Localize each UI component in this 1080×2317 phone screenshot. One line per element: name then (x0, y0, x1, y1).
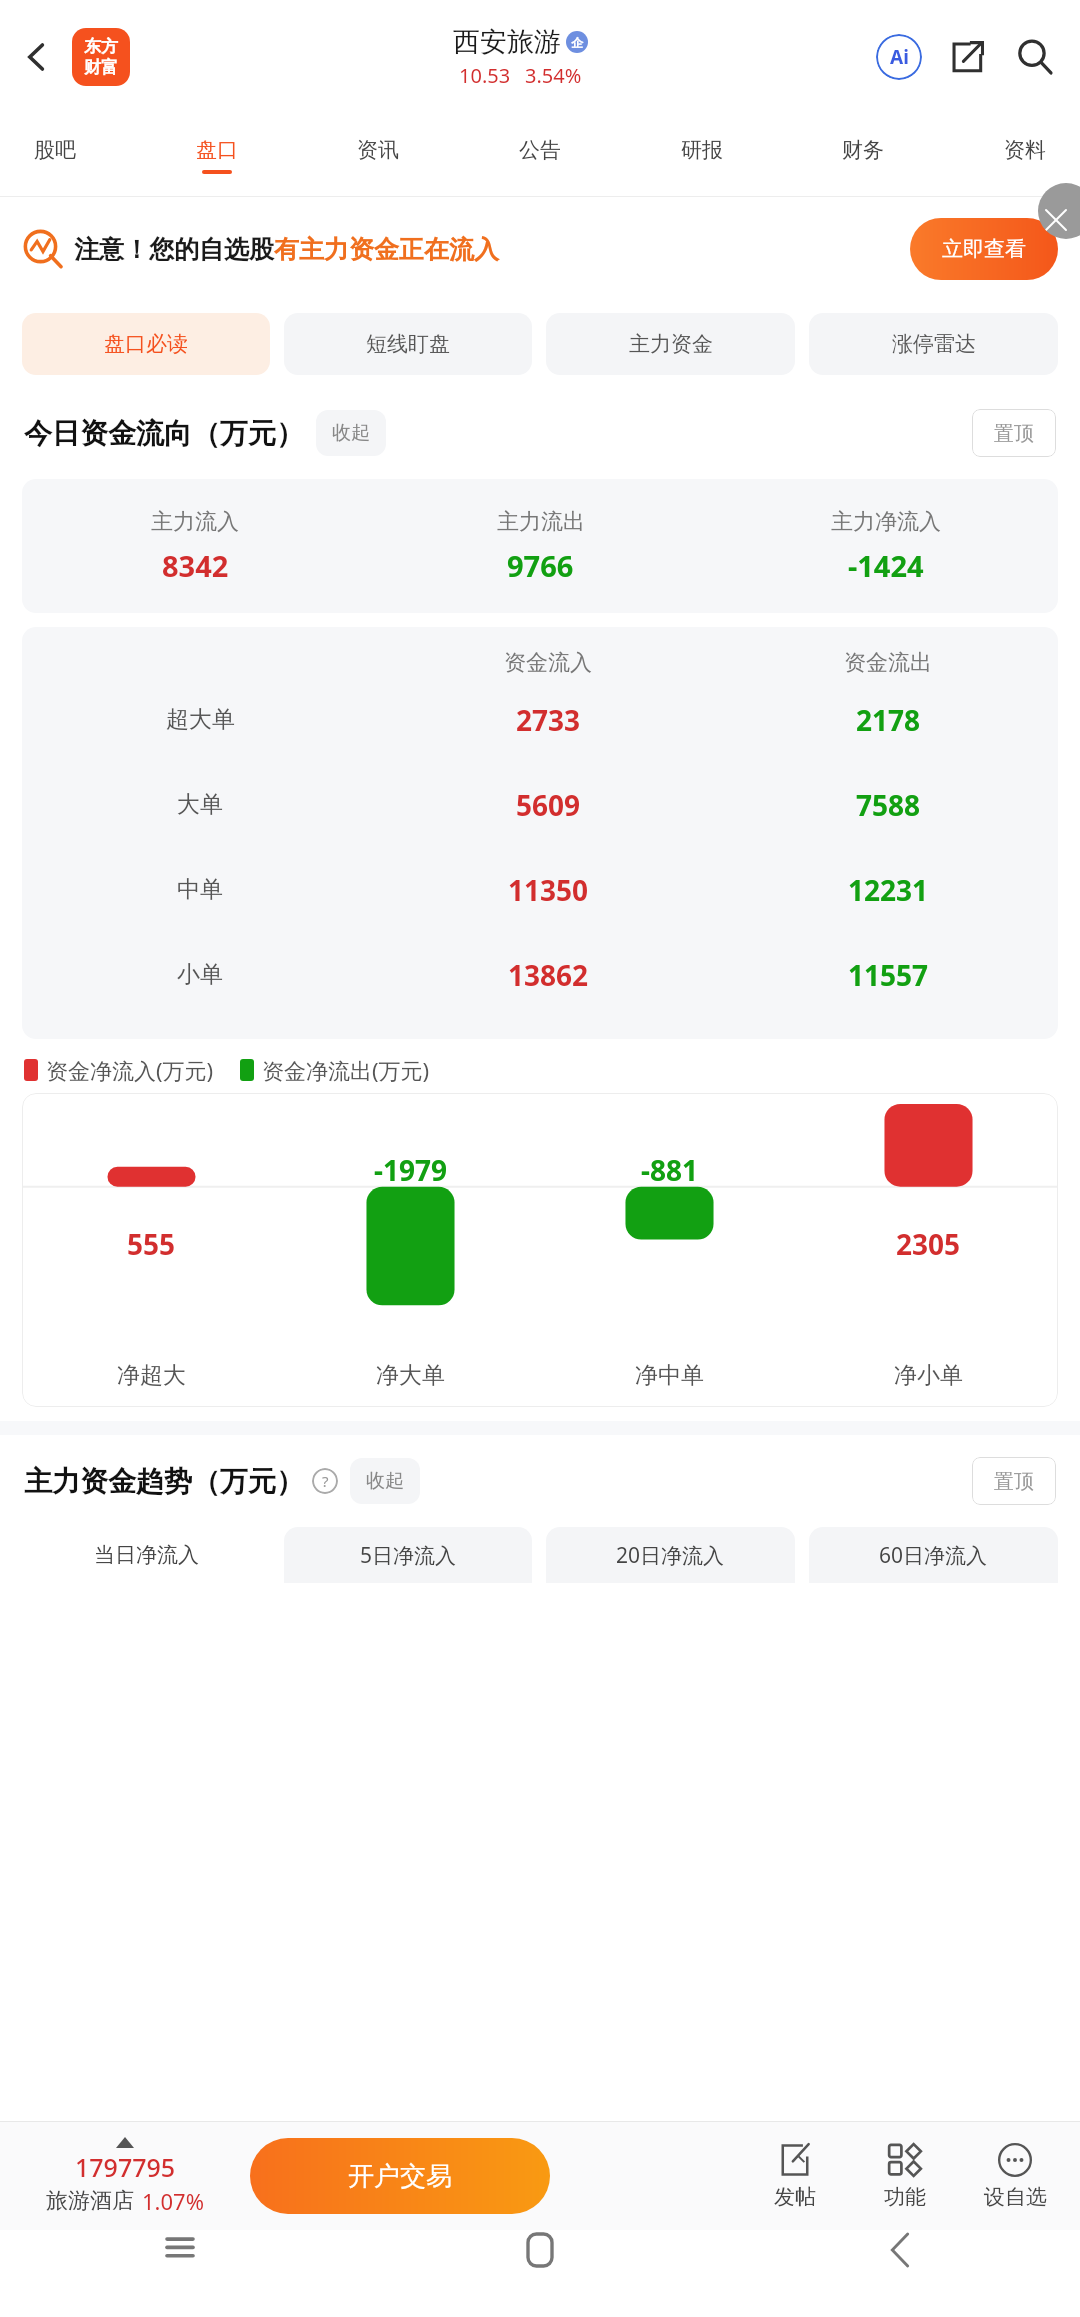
staticText: 当日净流入 (94, 1542, 199, 1568)
button[interactable]: 小单 (22, 932, 1058, 1017)
staticText: 资讯 (357, 137, 399, 163)
button[interactable]: Search (1004, 26, 1066, 88)
staticText: 10.53 (459, 62, 511, 89)
staticText: 超大单 (166, 705, 235, 734)
staticText: 收起 (332, 421, 370, 445)
button[interactable]: 股吧 (26, 131, 84, 180)
staticText: 主力资金趋势（万元） (24, 1464, 304, 1499)
staticText: 盘口必读 (104, 331, 188, 357)
staticText: 净大单 (376, 1361, 445, 1390)
staticText: 大单 (177, 790, 223, 819)
button[interactable]: 主力资金 (546, 313, 795, 375)
button[interactable]: AI assistant (868, 26, 930, 88)
staticText: 8342 (162, 546, 229, 585)
staticText: 今日资金流向（万元） (24, 416, 304, 451)
button[interactable]: 主力流入 (22, 479, 1058, 613)
button[interactable]: 公告 (511, 131, 569, 180)
button[interactable]: 功能 (850, 2138, 960, 2214)
staticText: 公告 (519, 137, 561, 163)
button[interactable]: 立即查看 (910, 218, 1058, 280)
button[interactable]: Close banner (1038, 183, 1080, 239)
button[interactable]: 资讯 (349, 131, 407, 180)
button[interactable]: 盘口 (188, 131, 246, 180)
staticText: 主力净流入 (831, 508, 941, 536)
staticText: 涨停雷达 (892, 331, 976, 357)
staticText: 资金净流出(万元) (262, 1055, 430, 1085)
button[interactable]: 盘口必读 (22, 313, 270, 375)
button[interactable]: 置顶 (972, 409, 1056, 457)
staticText: 旅游酒店 (46, 2187, 134, 2215)
button[interactable]: 当日净流入 (22, 1527, 270, 1583)
staticText: 60日净流入 (879, 1541, 988, 1570)
staticText: 发帖 (774, 2184, 816, 2210)
staticText: 1.07% (142, 2186, 204, 2216)
staticText: 资料 (1004, 137, 1046, 163)
staticText: ? (322, 1471, 329, 1491)
button[interactable]: 开户交易 (250, 2138, 550, 2214)
button[interactable]: Recents (0, 2230, 360, 2317)
button[interactable]: Home (360, 2230, 720, 2317)
button[interactable]: 资料 (996, 131, 1054, 180)
staticText: 设自选 (984, 2184, 1047, 2210)
staticText: 研报 (681, 137, 723, 163)
staticText: 股吧 (34, 137, 76, 163)
staticText: 11350 (508, 871, 589, 909)
button[interactable]: 研报 (673, 131, 731, 180)
button[interactable]: 1797795 (0, 2137, 250, 2216)
button[interactable]: Back (720, 2230, 1080, 2317)
staticText: 2178 (856, 701, 921, 739)
button[interactable]: 短线盯盘 (284, 313, 532, 375)
staticText: 2305 (896, 1225, 961, 1263)
staticText: 小单 (177, 960, 223, 989)
button[interactable]: Back (6, 26, 68, 88)
button[interactable]: 发帖 (740, 2138, 850, 2214)
staticText: -881 (641, 1151, 699, 1189)
staticText: 3.54% (525, 62, 582, 89)
staticText: 5609 (516, 786, 581, 824)
staticText: 主力流入 (151, 508, 239, 536)
button[interactable]: 财务 (834, 131, 892, 180)
button[interactable]: 60日净流入 (809, 1527, 1058, 1583)
staticText: 资金流入 (504, 649, 592, 677)
button[interactable]: 中单 (22, 847, 1058, 932)
button[interactable]: Help (312, 1468, 338, 1494)
button[interactable]: 555 (22, 1093, 1058, 1407)
button[interactable]: East Money logo (72, 28, 130, 86)
button[interactable]: 设自选 (960, 2138, 1070, 2214)
staticText: 11557 (848, 956, 929, 994)
staticText: 财务 (842, 137, 884, 163)
button[interactable]: Share (936, 26, 998, 88)
staticText: 净中单 (635, 1361, 704, 1390)
staticText: 12231 (848, 871, 929, 909)
staticText: 盘口 (196, 137, 238, 163)
button[interactable]: 超大单 (22, 677, 1058, 762)
staticText: -1424 (848, 546, 924, 585)
staticText: -1979 (374, 1151, 448, 1189)
staticText: 555 (127, 1225, 176, 1263)
staticText: 主力资金 (629, 331, 713, 357)
staticText: 企 (571, 35, 583, 50)
button[interactable]: 大单 (22, 762, 1058, 847)
button[interactable]: 收起 (316, 410, 386, 456)
button[interactable]: 20日净流入 (546, 1527, 795, 1583)
staticText: 中单 (177, 875, 223, 904)
staticText: 1797795 (75, 2150, 176, 2184)
staticText: 7588 (856, 786, 921, 824)
staticText: 13862 (508, 956, 589, 994)
button[interactable]: 置顶 (972, 1457, 1056, 1505)
staticText: 功能 (884, 2184, 926, 2210)
staticText: 净超大 (117, 1361, 186, 1390)
staticText: 置顶 (994, 421, 1034, 446)
staticText: 2733 (516, 701, 581, 739)
staticText: 置顶 (994, 1469, 1034, 1494)
staticText: 立即查看 (942, 236, 1026, 262)
button[interactable]: 涨停雷达 (809, 313, 1058, 375)
staticText: 注意！您的自选股 (74, 234, 274, 265)
staticText: 资金流出 (844, 649, 932, 677)
staticText: 资金净流入(万元) (46, 1055, 214, 1085)
button[interactable]: 收起 (350, 1458, 420, 1504)
button[interactable]: 5日净流入 (284, 1527, 532, 1583)
staticText: 财富 (84, 57, 118, 78)
staticText: 东方 (84, 36, 118, 57)
staticText: 短线盯盘 (366, 331, 450, 357)
